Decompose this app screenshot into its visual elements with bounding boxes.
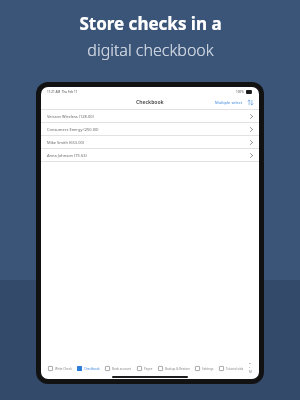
button[interactable]: More [249,362,252,374]
button[interactable]: Multiple select [215,99,254,106]
staticText: Verizon Wireless (128.00) [47,114,94,119]
button[interactable]: Checkbook [77,366,100,371]
staticText: Settings [202,367,214,371]
staticText: Backup & Restore [165,367,190,371]
staticText: Multiple select [215,100,243,105]
staticText: Checkbook [84,367,100,371]
button[interactable]: Verizon Wireless (128.00) [41,110,259,123]
button[interactable]: Settings [195,366,214,371]
staticText: Payee [144,367,153,371]
staticText: 100% [236,90,244,94]
staticText: Anna Johnson (75.63) [47,153,87,158]
staticText: Bank account [112,367,132,371]
staticText: Checkbook [136,99,164,106]
staticText: Write Check [55,367,72,371]
staticText: Tutorial vids [226,367,244,371]
button[interactable]: Sort [247,99,254,106]
button[interactable]: Anna Johnson (75.63) [41,149,259,162]
staticText: ••• More [249,362,252,374]
staticText: digital checkbook [87,39,214,61]
button[interactable]: Tutorial vids [219,366,244,371]
staticText: 11:21 AM Thu Feb 11 [47,90,78,94]
button[interactable]: Write Check [48,366,72,371]
button[interactable]: Consumers Energy (250.00) [41,123,259,136]
button[interactable]: Mike Smith (653.00) [41,136,259,149]
button[interactable]: Backup & Restore [158,366,190,371]
button[interactable]: Payee [137,366,153,371]
staticText: Store checks in a [79,12,222,35]
staticText: Consumers Energy (250.00) [47,127,99,132]
staticText: Mike Smith (653.00) [47,140,84,145]
button[interactable]: Bank account [105,366,132,371]
